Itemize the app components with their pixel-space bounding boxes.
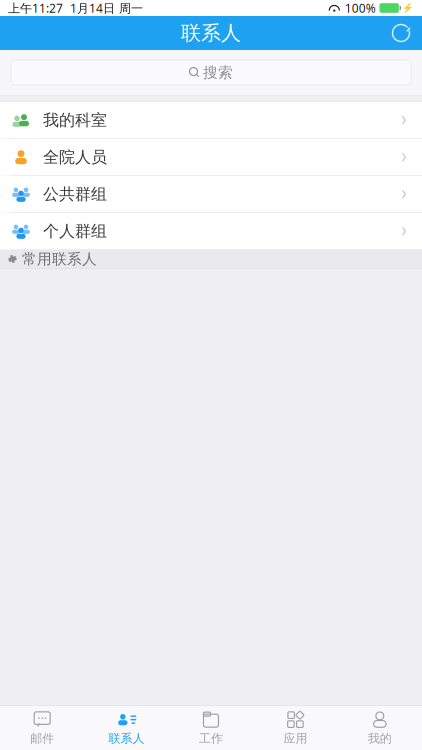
- staticText: 我的: [368, 731, 392, 746]
- button[interactable]: 联系人: [84, 706, 169, 750]
- staticText: 我的科室: [43, 110, 107, 130]
- staticText: 搜索: [203, 63, 233, 81]
- staticText: 100%: [345, 0, 376, 16]
- staticText: 上午11:27: [8, 0, 63, 16]
- button[interactable]: 公共群组: [0, 176, 422, 213]
- button[interactable]: 应用: [253, 706, 338, 750]
- staticText: 1月14日 周一: [70, 0, 143, 16]
- staticText: 全院人员: [43, 147, 107, 167]
- staticText: 公共群组: [43, 184, 107, 204]
- button[interactable]: 我的: [338, 706, 422, 750]
- button[interactable]: 搜索: [0, 60, 422, 85]
- button[interactable]: 我的科室: [0, 102, 422, 139]
- button[interactable]: 工作: [169, 706, 253, 750]
- staticText: 联系人: [109, 731, 145, 746]
- staticText: 邮件: [30, 731, 54, 746]
- staticText: ⚡: [402, 3, 414, 13]
- button[interactable]: 刷新: [380, 16, 422, 50]
- staticText: 工作: [199, 731, 223, 746]
- button[interactable]: 邮件: [0, 706, 84, 750]
- staticText: 个人群组: [43, 221, 107, 241]
- button[interactable]: 个人群组: [0, 213, 422, 250]
- button[interactable]: 全院人员: [0, 139, 422, 176]
- staticText: 常用联系人: [22, 250, 97, 268]
- staticText: 联系人: [181, 21, 241, 45]
- staticText: 应用: [283, 731, 307, 746]
